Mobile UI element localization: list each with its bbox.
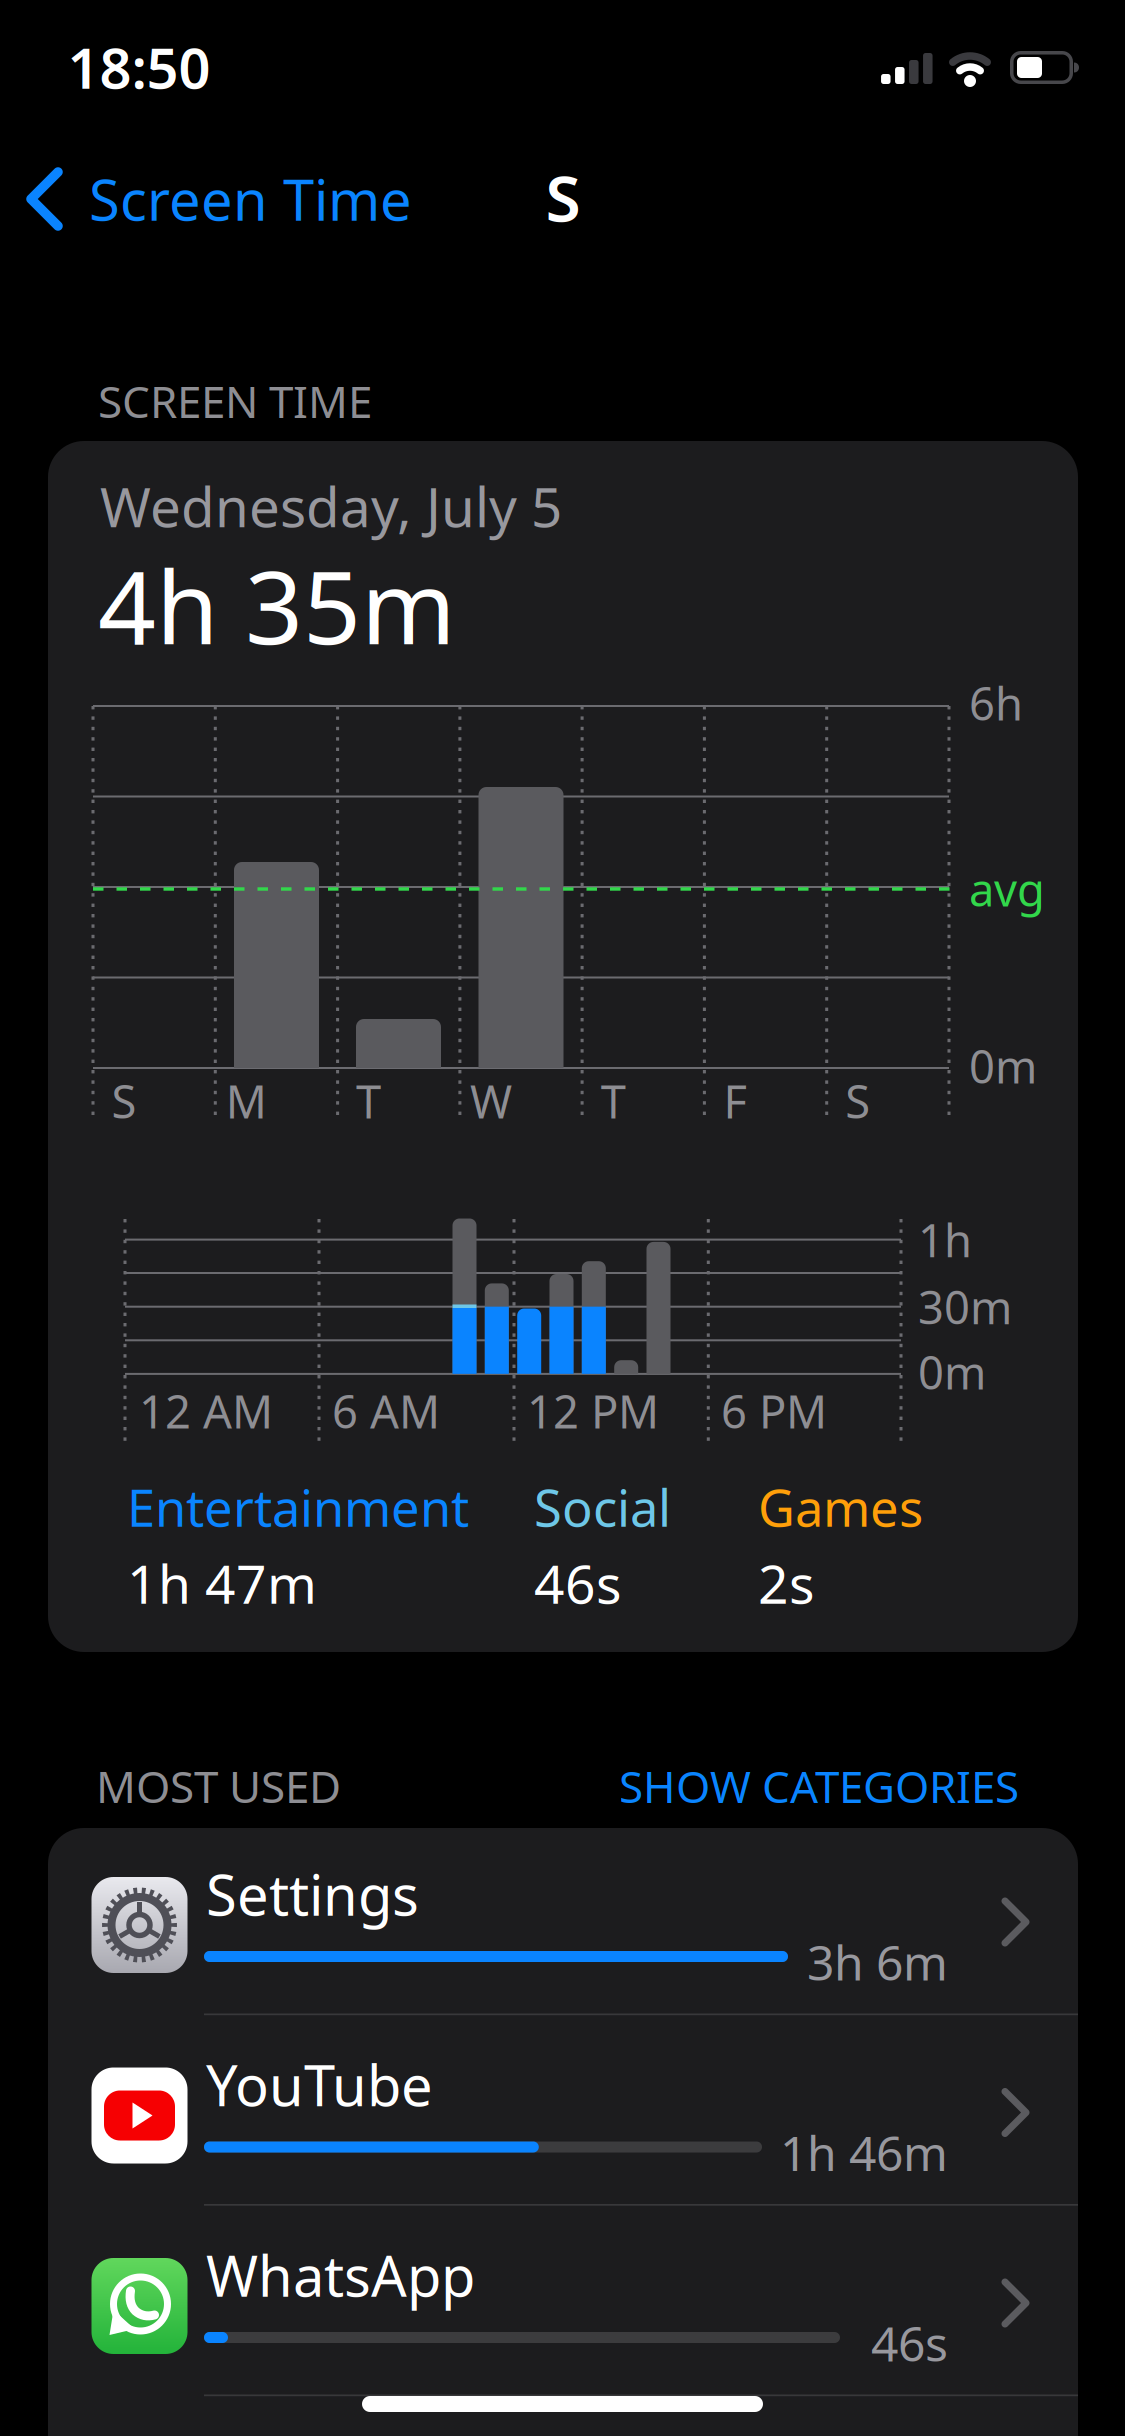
staticText: 1h 46m (780, 2121, 948, 2184)
button[interactable]: WhatsApp (48, 2211, 1078, 2401)
staticText: 3h 6m (807, 1930, 948, 1994)
staticText: 46s (871, 2311, 948, 2375)
button[interactable]: SHOW CATEGORIES (599, 1756, 1019, 1816)
staticText: S (845, 1071, 870, 1131)
button[interactable]: Settings (48, 1830, 1078, 2020)
staticText: 0m (918, 1342, 986, 1402)
staticText: 46s (534, 1548, 622, 1618)
staticText: W (470, 1071, 512, 1131)
staticText: 6 AM (332, 1381, 440, 1441)
staticText: 18:50 (67, 30, 210, 104)
staticText: S (111, 1071, 136, 1131)
staticText: 4h 35m (98, 538, 456, 672)
staticText: Entertainment (127, 1473, 469, 1541)
staticText: M (226, 1071, 267, 1131)
button[interactable]: YouTube (48, 2020, 1078, 2210)
staticText: 12 AM (139, 1381, 273, 1441)
staticText: SHOW CATEGORIES (619, 1757, 1019, 1815)
button[interactable]: Back (0, 154, 520, 244)
staticText: T (356, 1071, 381, 1131)
staticText: 6h (969, 673, 1023, 733)
staticText: WhatsApp (206, 2238, 475, 2312)
staticText: 12 PM (527, 1381, 659, 1441)
staticText: Wednesday, July 5 (100, 470, 562, 542)
staticText: Games (758, 1473, 923, 1541)
staticText: avg (969, 859, 1045, 919)
staticText: YouTube (206, 2047, 433, 2122)
staticText: 1h 47m (127, 1548, 317, 1618)
staticText: T (601, 1071, 626, 1131)
staticText: F (723, 1071, 747, 1131)
staticText: 6 PM (721, 1381, 827, 1441)
staticText: 2s (758, 1548, 815, 1618)
staticText: MOST USED (96, 1757, 341, 1815)
staticText: SCREEN TIME (98, 372, 372, 430)
staticText: Settings (206, 1857, 419, 1931)
staticText: Screen Time (89, 162, 412, 236)
staticText: 0m (969, 1036, 1037, 1096)
staticText: Social (534, 1473, 671, 1541)
staticText: 30m (918, 1277, 1012, 1337)
staticText: 1h (918, 1209, 972, 1270)
staticText: S (545, 154, 580, 239)
